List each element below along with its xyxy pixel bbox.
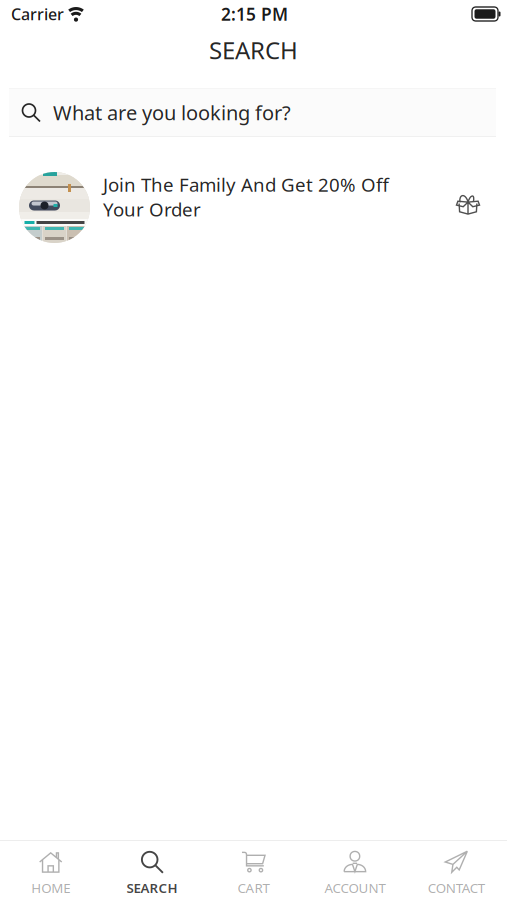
staticText: Join The Family And Get 20% Off Your Ord… xyxy=(103,172,389,222)
staticText: ACCOUNT xyxy=(324,879,385,897)
staticText: Carrier xyxy=(11,3,64,25)
staticText: CART xyxy=(237,879,269,897)
staticText: 2:15 PM xyxy=(221,2,288,25)
staticText: HOME xyxy=(31,879,70,897)
staticText: SEARCH xyxy=(127,879,178,897)
button[interactable]: CART xyxy=(203,850,304,897)
button[interactable]: ACCOUNT xyxy=(304,850,406,897)
button[interactable]: HOME xyxy=(0,850,101,897)
button[interactable]: What are you looking for? xyxy=(0,88,507,137)
button[interactable]: Join The Family And Get 20% Off Your Ord… xyxy=(19,172,403,243)
staticText: CONTACT xyxy=(428,879,485,897)
staticText: SEARCH xyxy=(209,34,298,66)
button[interactable]: SEARCH xyxy=(101,850,203,897)
button[interactable]: Offer details xyxy=(451,172,485,243)
button[interactable]: CONTACT xyxy=(406,850,507,897)
staticText: What are you looking for? xyxy=(53,99,291,126)
